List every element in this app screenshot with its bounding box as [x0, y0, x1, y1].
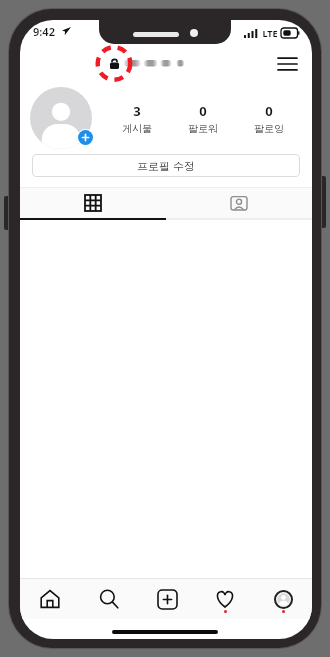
- button[interactable]: Search: [79, 579, 138, 619]
- button[interactable]: Profile photo: [30, 87, 92, 149]
- staticText: 팔로잉: [254, 122, 284, 135]
- staticText: 0: [199, 102, 207, 120]
- button[interactable]: 프로필 수정: [32, 154, 300, 177]
- staticText: 9:42: [33, 24, 55, 39]
- staticText: 0: [265, 102, 273, 120]
- button[interactable]: Activity: [196, 579, 254, 619]
- button[interactable]: Menu: [270, 47, 304, 81]
- staticText: 팔로워: [188, 122, 218, 135]
- staticText: 3: [133, 102, 141, 120]
- button[interactable]: 0: [236, 98, 302, 139]
- button[interactable]: 3: [104, 98, 170, 139]
- button[interactable]: Home: [20, 579, 79, 619]
- button[interactable]: Tagged photos: [166, 188, 312, 218]
- staticText: 게시물: [122, 122, 152, 135]
- staticText: 프로필 수정: [137, 158, 195, 173]
- button[interactable]: Profile: [254, 579, 312, 619]
- button[interactable]: 0: [170, 98, 236, 139]
- button[interactable]: Grid posts: [20, 188, 166, 218]
- staticText: LTE: [262, 27, 278, 39]
- button[interactable]: Create: [138, 579, 196, 619]
